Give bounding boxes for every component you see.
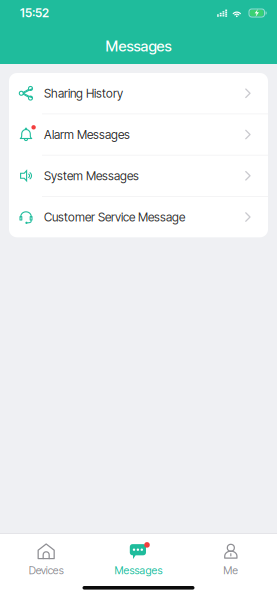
button[interactable]: Me	[185, 534, 277, 580]
staticText: Messages	[114, 564, 162, 577]
button[interactable]: System Messages	[9, 155, 268, 197]
staticText: System Messages	[44, 168, 139, 183]
button[interactable]: Customer Service Message	[9, 197, 268, 237]
staticText: 15:52	[20, 6, 49, 20]
button[interactable]: Devices	[0, 534, 92, 580]
staticText: Alarm Messages	[44, 127, 130, 142]
staticText: Messages	[105, 37, 171, 55]
staticText: Sharing History	[44, 86, 123, 100]
staticText: Me	[223, 564, 238, 577]
staticText: Devices	[29, 564, 64, 577]
button[interactable]: Messages	[92, 534, 185, 580]
staticText: Customer Service Message	[44, 210, 185, 224]
button[interactable]: Alarm Messages	[9, 114, 268, 155]
button[interactable]: Sharing History	[9, 73, 268, 114]
